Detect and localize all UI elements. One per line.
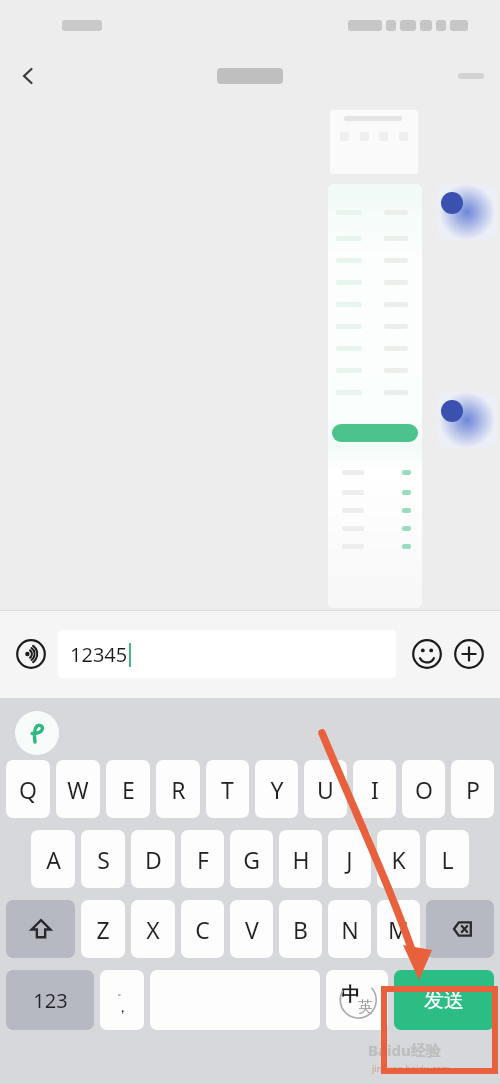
staticText: O [415, 774, 433, 805]
staticText: M [388, 914, 409, 945]
button[interactable]: H [279, 830, 322, 888]
staticText: B [293, 914, 308, 945]
staticText: D [145, 844, 162, 875]
button[interactable]: Q [6, 760, 50, 818]
staticText: 英 [358, 998, 373, 1017]
staticText: V [245, 914, 259, 945]
staticText: A [46, 844, 61, 875]
button[interactable]: Back [6, 54, 50, 98]
staticText: C [195, 914, 210, 945]
button[interactable]: M [377, 900, 420, 958]
button[interactable]: Input method settings [15, 711, 59, 755]
button[interactable]: 12345 [58, 630, 396, 678]
staticText: 。 [117, 984, 128, 998]
staticText: Baidu经验 [368, 1040, 441, 1060]
button[interactable]: More [458, 73, 484, 79]
button[interactable]: L [426, 830, 469, 888]
staticText: I [371, 774, 379, 805]
staticText: Z [96, 914, 110, 945]
staticText: R [171, 774, 186, 805]
button[interactable]: K [377, 830, 420, 888]
button[interactable]: P [451, 760, 494, 818]
staticText: W [67, 774, 89, 805]
button[interactable]: C [181, 900, 224, 958]
button[interactable]: J [328, 830, 371, 888]
button[interactable]: Z [81, 900, 125, 958]
staticText: E [122, 774, 135, 805]
button[interactable]: I [353, 760, 396, 818]
staticText: X [146, 914, 160, 945]
button[interactable]: Punctuation [100, 970, 144, 1030]
staticText: S [97, 844, 110, 875]
staticText: P [466, 774, 480, 805]
button[interactable]: Backspace [426, 900, 494, 958]
staticText: T [221, 774, 234, 805]
button[interactable]: G [230, 830, 273, 888]
button[interactable]: R [156, 760, 200, 818]
button[interactable]: B [279, 900, 322, 958]
button[interactable]: F [181, 830, 224, 888]
staticText: H [292, 844, 310, 875]
button[interactable]: N [328, 900, 371, 958]
staticText: ， [115, 998, 130, 1017]
staticText: K [391, 844, 406, 875]
staticText: J [346, 844, 353, 875]
staticText: N [341, 914, 359, 945]
button[interactable]: Y [255, 760, 298, 818]
button[interactable]: Chinese English toggle [326, 970, 388, 1030]
staticText: 发送 [424, 988, 464, 1013]
staticText: Y [270, 774, 284, 805]
staticText: G [243, 844, 260, 875]
button[interactable]: Emoji [406, 633, 448, 675]
button[interactable]: W [56, 760, 100, 818]
button[interactable]: E [106, 760, 150, 818]
staticText: jingyan.baidu.com [372, 1062, 450, 1074]
button[interactable]: X [131, 900, 175, 958]
button[interactable]: T [206, 760, 249, 818]
staticText: 12345 [70, 641, 128, 668]
button[interactable]: 123 [6, 970, 94, 1030]
button[interactable]: More functions [448, 633, 490, 675]
button[interactable]: V [230, 900, 273, 958]
button[interactable]: A [31, 830, 75, 888]
button[interactable]: O [402, 760, 445, 818]
button[interactable]: D [131, 830, 175, 888]
staticText: L [441, 844, 454, 875]
button[interactable]: S [81, 830, 125, 888]
button[interactable]: Voice input [10, 633, 52, 675]
staticText: 123 [33, 987, 68, 1014]
staticText: U [317, 774, 334, 805]
button[interactable]: 发送 [394, 970, 494, 1030]
staticText: F [197, 844, 209, 875]
button[interactable]: Shift [6, 900, 75, 958]
staticText: Q [19, 774, 37, 805]
button[interactable]: U [304, 760, 347, 818]
staticText: 中 [341, 983, 360, 1007]
